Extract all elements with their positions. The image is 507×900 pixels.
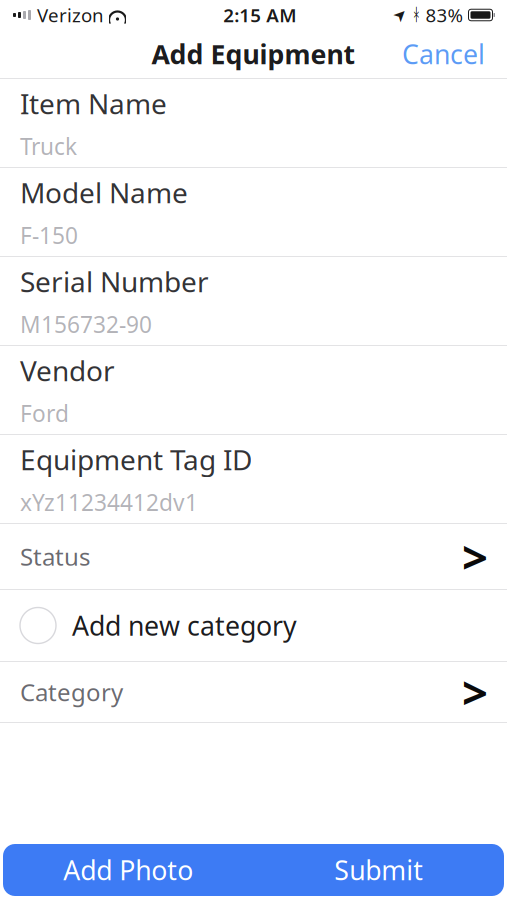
staticText: Vendor xyxy=(20,352,115,389)
staticText: Ford xyxy=(20,398,69,428)
staticText: F-150 xyxy=(20,220,78,250)
staticText: Add new category xyxy=(72,608,297,643)
button[interactable]: Category xyxy=(0,662,507,722)
staticText: Verizon xyxy=(37,3,104,27)
staticText: ᚼ xyxy=(411,6,421,23)
staticText: 83% xyxy=(425,3,463,27)
staticText: Equipment Tag ID xyxy=(20,441,252,478)
staticText: > xyxy=(462,526,488,587)
staticText: Add Equipment xyxy=(151,36,355,72)
button[interactable]: Add new category xyxy=(0,590,507,661)
staticText: Serial Number xyxy=(20,263,209,300)
staticText: Model Name xyxy=(20,174,188,211)
staticText: > xyxy=(462,662,488,722)
button[interactable]: Cancel xyxy=(392,30,495,78)
button[interactable]: Serial Number xyxy=(0,257,507,345)
staticText: Category xyxy=(20,676,123,708)
staticText: Submit xyxy=(334,852,423,888)
button[interactable]: Equipment Tag ID xyxy=(0,435,507,523)
button[interactable]: Vendor xyxy=(0,346,507,434)
button[interactable]: Add Photo xyxy=(3,844,253,896)
staticText: 2:15 AM xyxy=(223,3,296,27)
staticText: Status xyxy=(20,541,90,572)
button[interactable]: Model Name xyxy=(0,168,507,256)
button[interactable]: Item Name xyxy=(0,79,507,167)
button[interactable]: Submit xyxy=(253,844,504,896)
staticText: xYz11234412dv1 xyxy=(20,487,198,517)
staticText: ➤ xyxy=(393,6,406,24)
staticText: Item Name xyxy=(20,85,167,122)
button[interactable]: Status xyxy=(0,524,507,589)
staticText: Truck xyxy=(20,131,77,161)
staticText: Cancel xyxy=(402,36,485,72)
staticText: Add Photo xyxy=(63,852,193,888)
staticText: M156732-90 xyxy=(20,309,152,339)
